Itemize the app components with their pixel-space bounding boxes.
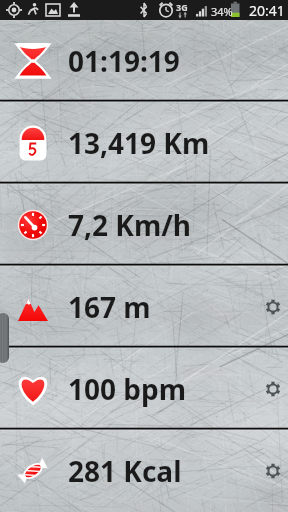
staticText: 20:41 (249, 1, 285, 20)
button[interactable]: 01:19:19 (0, 20, 288, 102)
staticText: 7,2 Km/h (68, 206, 192, 244)
staticText: 167 m (68, 288, 151, 326)
button[interactable]: 167 m (0, 266, 288, 348)
staticText: 281 Kcal (68, 452, 182, 490)
button[interactable]: Settings (258, 348, 288, 430)
button[interactable]: 13,419 Km (0, 102, 288, 184)
button[interactable]: 100 bpm (0, 348, 288, 430)
staticText: 3G (176, 1, 188, 13)
button[interactable]: 281 Kcal (0, 430, 288, 512)
staticText: 13,419 Km (68, 124, 210, 162)
button[interactable]: Settings (258, 266, 288, 348)
button[interactable]: 7,2 Km/h (0, 184, 288, 266)
staticText: 100 bpm (68, 370, 187, 408)
staticText: 34% (211, 4, 233, 19)
staticText: 01:19:19 (68, 42, 180, 80)
button[interactable]: Settings (258, 430, 288, 512)
